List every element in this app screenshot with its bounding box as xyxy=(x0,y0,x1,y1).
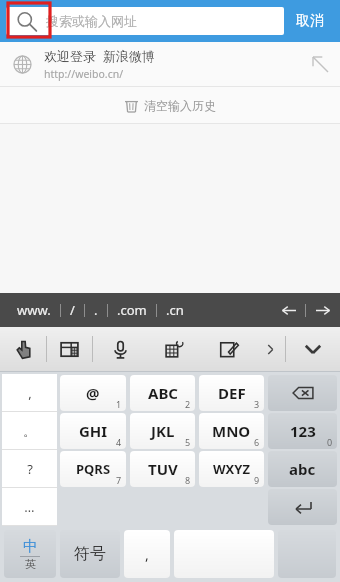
button[interactable]: Hide keyboard xyxy=(286,327,340,371)
staticText: GHI xyxy=(79,421,108,441)
button[interactable]: abc xyxy=(268,451,337,487)
staticText: / xyxy=(70,301,75,319)
button[interactable]: Switch keypad xyxy=(147,327,201,371)
button[interactable]: @ xyxy=(60,375,126,411)
button[interactable]: Search xyxy=(6,7,284,35)
staticText: 4 xyxy=(116,436,122,448)
staticText: abc xyxy=(289,459,316,479)
button[interactable]: Voice input xyxy=(93,327,147,371)
staticText: 取消 xyxy=(296,12,324,30)
staticText: 7 xyxy=(116,474,122,486)
staticText: 5 xyxy=(185,436,191,448)
staticText: 英 xyxy=(25,557,36,571)
staticText: 123 xyxy=(290,421,316,441)
button[interactable]: Keyboard layout xyxy=(47,327,92,371)
button[interactable]: 取消 xyxy=(284,0,336,42)
staticText: 9 xyxy=(254,474,260,486)
button[interactable] xyxy=(174,530,274,578)
staticText: … xyxy=(24,498,35,516)
staticText: 8 xyxy=(185,474,191,486)
staticText: ABC xyxy=(148,383,178,403)
staticText: , xyxy=(145,545,149,564)
staticText: 搜索或输入网址 xyxy=(46,13,137,29)
button[interactable]: 符号 xyxy=(60,530,120,578)
staticText: .com xyxy=(117,301,147,319)
button[interactable]: TUV xyxy=(130,451,195,487)
button[interactable]: Move cursor right xyxy=(306,293,340,327)
button[interactable]: MNO xyxy=(199,413,264,449)
staticText: . xyxy=(94,301,98,319)
button[interactable]: ABC xyxy=(130,375,195,411)
staticText: 。 xyxy=(23,423,36,439)
button[interactable]: Fill in search box xyxy=(300,42,340,86)
staticText: 2 xyxy=(185,398,191,410)
staticText: @ xyxy=(86,383,100,403)
staticText: 清空输入历史 xyxy=(144,98,216,113)
button[interactable]: 123 xyxy=(268,413,337,449)
staticText: TUV xyxy=(148,459,178,479)
staticText: MNO xyxy=(212,421,251,441)
staticText: 0 xyxy=(327,436,333,448)
staticText: www. xyxy=(17,301,51,319)
staticText: http://weibo.cn/ xyxy=(44,67,124,81)
button[interactable]: 中 xyxy=(4,530,56,578)
button[interactable]: Handwriting xyxy=(201,327,255,371)
button[interactable] xyxy=(278,530,336,578)
button[interactable]: WXYZ xyxy=(199,451,264,487)
staticText: ? xyxy=(27,460,33,478)
staticText: 1 xyxy=(116,398,122,410)
staticText: , xyxy=(28,384,32,402)
button[interactable]: .cn xyxy=(166,301,184,319)
staticText: DEF xyxy=(218,383,246,403)
button[interactable]: … xyxy=(2,488,57,526)
button[interactable]: GHI xyxy=(60,413,126,449)
staticText: 欢迎登录 新浪微博 xyxy=(44,47,155,65)
button[interactable]: Delete xyxy=(268,375,337,411)
button[interactable]: ? xyxy=(2,450,57,488)
button[interactable]: www. xyxy=(17,301,51,319)
staticText: .cn xyxy=(166,301,184,319)
button[interactable]: .com xyxy=(117,301,147,319)
staticText: JKL xyxy=(151,421,175,441)
staticText: 中 xyxy=(23,537,38,556)
button[interactable]: DEF xyxy=(199,375,264,411)
button[interactable]: 。 xyxy=(2,412,57,450)
button[interactable]: PQRS xyxy=(60,451,126,487)
staticText: 3 xyxy=(254,398,260,410)
button[interactable]: / xyxy=(70,301,75,319)
button[interactable]: JKL xyxy=(130,413,195,449)
button[interactable]: . xyxy=(94,301,98,319)
button[interactable]: Handwriting cursor xyxy=(0,327,46,371)
button[interactable]: 清空输入历史 xyxy=(0,87,340,123)
button[interactable]: 欢迎登录 新浪微博 xyxy=(0,42,340,86)
staticText: 符号 xyxy=(74,544,106,564)
button[interactable]: Enter xyxy=(268,489,337,525)
staticText: WXYZ xyxy=(213,460,250,478)
button[interactable]: , xyxy=(124,530,170,578)
button[interactable]: , xyxy=(2,374,57,412)
button[interactable]: Move cursor left xyxy=(271,293,305,327)
other: Search xyxy=(6,7,46,35)
staticText: PQRS xyxy=(76,460,111,478)
staticText: 6 xyxy=(254,436,260,448)
button[interactable]: More xyxy=(255,327,285,371)
